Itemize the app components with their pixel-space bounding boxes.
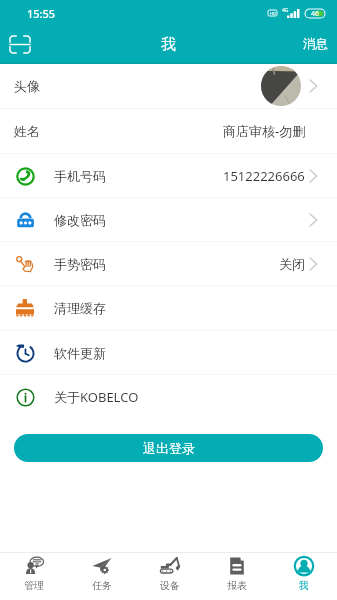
button[interactable]: 消息: [293, 30, 337, 58]
staticText: 报表: [227, 579, 247, 592]
staticText: 头像: [14, 78, 40, 94]
button[interactable]: 软件更新: [0, 331, 337, 374]
button[interactable]: 任务: [68, 553, 136, 594]
staticText: 清理缓存: [54, 300, 106, 316]
staticText: 商店审核-勿删: [223, 122, 306, 140]
button[interactable]: 手机号码: [0, 154, 337, 197]
staticText: 姓名: [14, 123, 40, 139]
button[interactable]: 姓名: [0, 109, 337, 153]
button[interactable]: 头像: [0, 64, 337, 108]
staticText: 15122226666: [223, 167, 305, 185]
staticText: 15:55: [27, 6, 56, 21]
button[interactable]: 退出登录: [14, 434, 323, 462]
staticText: 我: [299, 579, 309, 592]
staticText: 设备: [160, 579, 180, 592]
staticText: 消息: [303, 36, 328, 52]
staticText: 修改密码: [54, 212, 106, 228]
button[interactable]: 修改密码: [0, 198, 337, 241]
button[interactable]: 我: [270, 553, 337, 594]
button[interactable]: 管理: [0, 553, 68, 594]
staticText: 我: [161, 35, 176, 54]
staticText: 手机号码: [54, 168, 106, 184]
button[interactable]: 报表: [203, 553, 270, 594]
button[interactable]: 清理缓存: [0, 286, 337, 330]
staticText: 手势密码: [54, 256, 106, 272]
staticText: 软件更新: [54, 345, 106, 361]
staticText: 关闭: [279, 256, 305, 272]
button[interactable]: 关于KOBELCO: [0, 375, 337, 418]
button[interactable]: 设备: [136, 553, 203, 594]
staticText: 46: [311, 9, 320, 18]
staticText: 4G: [282, 7, 289, 14]
button[interactable]: 手势密码: [0, 242, 337, 285]
staticText: 关于KOBELCO: [54, 388, 139, 406]
staticText: 管理: [24, 579, 44, 592]
button[interactable]: Scan QR code: [0, 26, 40, 62]
staticText: 退出登录: [143, 440, 195, 456]
staticText: 任务: [92, 579, 112, 592]
staticText: HD: [270, 11, 276, 16]
